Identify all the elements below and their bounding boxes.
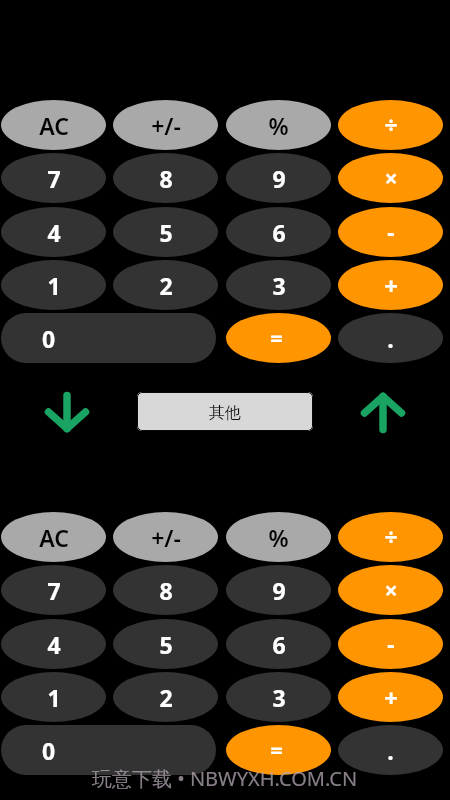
button[interactable]: + [338, 672, 443, 722]
button[interactable]: Previous skin [44, 391, 90, 433]
staticText: 6 [272, 629, 286, 660]
button[interactable]: 5 [113, 207, 218, 257]
button[interactable]: ÷ [338, 100, 443, 150]
staticText: . [387, 323, 394, 354]
staticText: +/- [151, 110, 181, 141]
staticText: 3 [272, 682, 286, 713]
staticText: 1 [47, 682, 61, 713]
staticText: - [387, 216, 395, 247]
staticText: AC [39, 110, 69, 141]
staticText: × [384, 162, 398, 193]
button[interactable]: Next skin [360, 392, 406, 434]
button[interactable]: 1 [1, 672, 106, 722]
staticText: +/- [151, 522, 181, 553]
button[interactable]: 3 [226, 672, 331, 722]
staticText: 9 [272, 575, 286, 606]
staticText: 7 [47, 163, 61, 194]
staticText: 2 [159, 270, 173, 301]
staticText: 5 [159, 217, 173, 248]
button[interactable]: AC [1, 512, 106, 562]
button[interactable]: 8 [113, 565, 218, 615]
staticText: % [268, 110, 289, 141]
staticText: 玩意下载 • NBWYXH.COM.CN [92, 765, 358, 792]
button[interactable]: 6 [226, 619, 331, 669]
staticText: 8 [159, 575, 173, 606]
button[interactable]: - [338, 207, 443, 257]
button[interactable]: +/- [113, 512, 218, 562]
staticText: 4 [47, 629, 61, 660]
staticText: 6 [272, 217, 286, 248]
button[interactable]: 4 [1, 207, 106, 257]
button[interactable]: = [226, 313, 331, 363]
staticText: 3 [272, 270, 286, 301]
button[interactable]: 8 [113, 153, 218, 203]
button[interactable]: + [338, 260, 443, 310]
button[interactable]: % [226, 100, 331, 150]
staticText: 8 [159, 163, 173, 194]
button[interactable]: - [338, 619, 443, 669]
staticText: 2 [159, 682, 173, 713]
staticText: 0 [42, 323, 56, 354]
staticText: 5 [159, 629, 173, 660]
button[interactable]: 5 [113, 619, 218, 669]
staticText: 7 [47, 575, 61, 606]
button[interactable]: +/- [113, 100, 218, 150]
button[interactable]: . [338, 313, 443, 363]
staticText: AC [39, 522, 69, 553]
button[interactable]: 2 [113, 260, 218, 310]
staticText: 4 [47, 217, 61, 248]
button[interactable]: 7 [1, 565, 106, 615]
staticText: ÷ [384, 109, 398, 140]
staticText: % [268, 522, 289, 553]
button[interactable]: ÷ [338, 512, 443, 562]
staticText: - [387, 628, 395, 659]
staticText: = [270, 322, 283, 352]
staticText: 其他 [209, 403, 241, 423]
staticText: = [270, 734, 283, 764]
button[interactable]: 9 [226, 153, 331, 203]
staticText: × [384, 574, 398, 605]
button[interactable]: . [338, 725, 443, 775]
button[interactable]: 2 [113, 672, 218, 722]
button[interactable]: 其他 [137, 392, 313, 431]
button[interactable]: 0 [1, 313, 216, 363]
button[interactable]: AC [1, 100, 106, 150]
button[interactable]: 0 [1, 725, 216, 775]
button[interactable]: = [226, 725, 331, 775]
button[interactable]: 9 [226, 565, 331, 615]
button[interactable]: × [338, 565, 443, 615]
button[interactable]: 6 [226, 207, 331, 257]
staticText: + [384, 681, 398, 714]
staticText: ÷ [384, 521, 398, 552]
staticText: 0 [42, 735, 56, 766]
button[interactable]: 7 [1, 153, 106, 203]
button[interactable]: 1 [1, 260, 106, 310]
staticText: 9 [272, 163, 286, 194]
button[interactable]: × [338, 153, 443, 203]
button[interactable]: 4 [1, 619, 106, 669]
button[interactable]: 3 [226, 260, 331, 310]
staticText: . [387, 735, 394, 766]
staticText: + [384, 269, 398, 302]
staticText: 1 [47, 270, 61, 301]
button[interactable]: % [226, 512, 331, 562]
